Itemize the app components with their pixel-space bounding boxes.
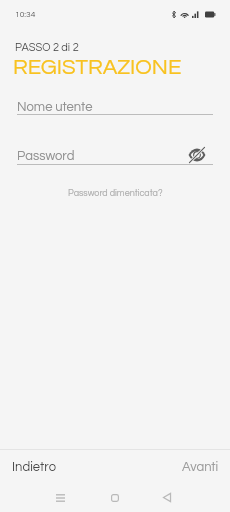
staticText: Nome utente [17,100,93,113]
button[interactable]: Back [152,483,182,512]
button[interactable]: Nome utente [17,98,213,115]
button[interactable]: Indietro [0,450,115,483]
staticText: REGISTRAZIONE [13,56,182,79]
button[interactable]: Recent apps [45,483,75,512]
button[interactable]: Home [100,483,130,512]
staticText: Indietro [12,460,56,473]
button[interactable]: Password dimenticata? [0,184,230,202]
button[interactable]: Avanti [115,450,230,483]
staticText: 10:34 [15,10,36,19]
staticText: Avanti [182,460,219,473]
button[interactable]: Show password [187,145,207,165]
staticText: Password dimenticata? [68,189,163,198]
staticText: Password [17,149,75,162]
staticText: PASSO 2 di 2 [15,42,79,53]
button[interactable]: Password [17,147,187,164]
